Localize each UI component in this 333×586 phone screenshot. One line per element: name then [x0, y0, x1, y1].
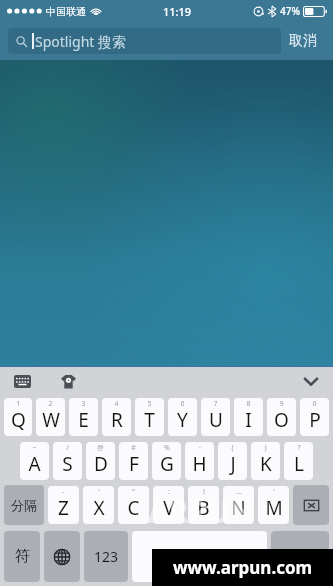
staticText: 11:19	[163, 4, 192, 19]
staticText: @	[97, 443, 104, 453]
button[interactable]: ·	[185, 442, 214, 480]
staticText: Y	[177, 407, 188, 433]
staticText: 2	[48, 399, 53, 409]
button[interactable]: 4	[102, 398, 131, 436]
staticText: N	[231, 495, 246, 521]
button[interactable]: Keyboard layout	[10, 371, 35, 392]
button[interactable]: -	[48, 486, 79, 524]
staticText: V	[163, 495, 175, 521]
button[interactable]: @	[86, 442, 115, 480]
staticText: “	[132, 487, 135, 497]
button[interactable]: %	[152, 442, 181, 480]
button[interactable]: )	[251, 442, 280, 480]
staticText: !	[203, 487, 205, 497]
staticText: :	[168, 487, 170, 497]
staticText: 取消	[289, 32, 317, 50]
button[interactable]: “	[118, 486, 149, 524]
staticText: (	[231, 443, 234, 453]
button[interactable]: 3	[69, 398, 98, 436]
staticText: 4	[114, 399, 119, 409]
button[interactable]: Switch language	[44, 531, 80, 582]
button[interactable]: 分隔	[4, 485, 44, 525]
staticText: H	[192, 451, 207, 477]
button[interactable]: /	[53, 442, 82, 480]
button[interactable]: (	[218, 442, 247, 480]
staticText: Z	[58, 495, 69, 521]
staticText: 3	[81, 399, 86, 409]
staticText: …	[236, 487, 242, 497]
staticText: 分隔	[11, 497, 37, 513]
button[interactable]: ~	[20, 442, 49, 480]
staticText: K	[260, 451, 272, 477]
button[interactable]: 7	[201, 398, 230, 436]
staticText: L	[294, 451, 304, 477]
staticText: 47%	[280, 4, 300, 18]
staticText: Q	[11, 407, 26, 433]
staticText: G	[160, 451, 174, 477]
staticText: ARPUN	[148, 491, 255, 532]
button[interactable]: 1	[4, 398, 32, 436]
button[interactable]: Spotlight 搜索	[8, 28, 281, 54]
button[interactable]: Theme	[57, 370, 80, 393]
staticText: )	[264, 443, 267, 453]
staticText: 7	[213, 399, 218, 409]
button[interactable]: ?	[284, 442, 313, 480]
staticText: 6	[180, 399, 185, 409]
button[interactable]: Delete	[293, 485, 329, 525]
button[interactable]: 2	[36, 398, 65, 436]
staticText: T	[144, 407, 155, 433]
button[interactable]: …	[223, 486, 254, 524]
staticText: O	[274, 407, 289, 433]
staticText: ’	[273, 487, 275, 497]
staticText: -	[62, 487, 65, 497]
staticText: 123	[94, 547, 119, 566]
staticText: /	[66, 443, 69, 453]
button[interactable]: 换行	[271, 531, 329, 582]
button[interactable]: 8	[234, 398, 263, 436]
staticText: J	[230, 451, 236, 477]
button[interactable]: ‘	[83, 486, 114, 524]
staticText: Spotlight 搜索	[35, 32, 126, 51]
button[interactable]: 取消	[281, 28, 325, 54]
staticText: R	[111, 407, 123, 433]
staticText: M	[265, 495, 283, 521]
staticText: 中国联通	[46, 5, 86, 18]
staticText: C	[127, 495, 140, 521]
staticText: #	[131, 443, 136, 453]
staticText: 换行	[287, 549, 313, 565]
staticText: U	[209, 407, 223, 433]
staticText: www.arpun.com	[173, 556, 313, 579]
button[interactable]: #	[119, 442, 148, 480]
staticText: ·	[199, 443, 201, 453]
staticText: 8	[246, 399, 251, 409]
staticText: B	[197, 495, 210, 521]
button[interactable]: Hide keyboard	[299, 372, 323, 391]
button[interactable]: ’	[258, 486, 289, 524]
staticText: D	[94, 451, 108, 477]
button[interactable]: 123	[84, 531, 128, 582]
button[interactable]: 9	[267, 398, 296, 436]
staticText: E	[78, 407, 89, 433]
staticText: S	[62, 451, 73, 477]
staticText: 1	[16, 399, 21, 409]
button[interactable]: 符	[4, 531, 40, 582]
staticText: F	[129, 451, 139, 477]
staticText: 5	[147, 399, 152, 409]
staticText: W	[42, 407, 60, 433]
button[interactable]: 6	[168, 398, 197, 436]
staticText: ‘	[98, 487, 100, 497]
staticText: 中	[193, 549, 206, 565]
staticText: A	[28, 451, 41, 477]
button[interactable]: :	[153, 486, 184, 524]
staticText: 0	[312, 399, 317, 409]
staticText: 符	[15, 547, 30, 566]
staticText: 9	[279, 399, 284, 409]
staticText: ?	[297, 443, 301, 453]
button[interactable]: 5	[135, 398, 164, 436]
staticText: I	[245, 407, 252, 433]
button[interactable]: 0	[300, 398, 329, 436]
staticText: ~	[32, 443, 37, 453]
button[interactable]: 中	[132, 531, 267, 582]
button[interactable]: !	[188, 486, 219, 524]
staticText: P	[309, 407, 321, 433]
